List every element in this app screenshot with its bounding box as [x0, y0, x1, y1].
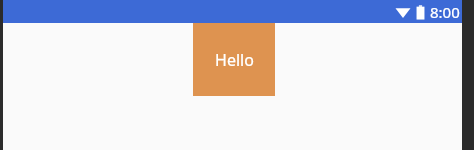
staticText: 8:00: [430, 2, 460, 22]
other: Battery full: [416, 5, 425, 20]
other: Wi-Fi signal: [395, 5, 411, 19]
button[interactable]: Hello: [193, 23, 275, 96]
staticText: Hello: [215, 49, 254, 71]
